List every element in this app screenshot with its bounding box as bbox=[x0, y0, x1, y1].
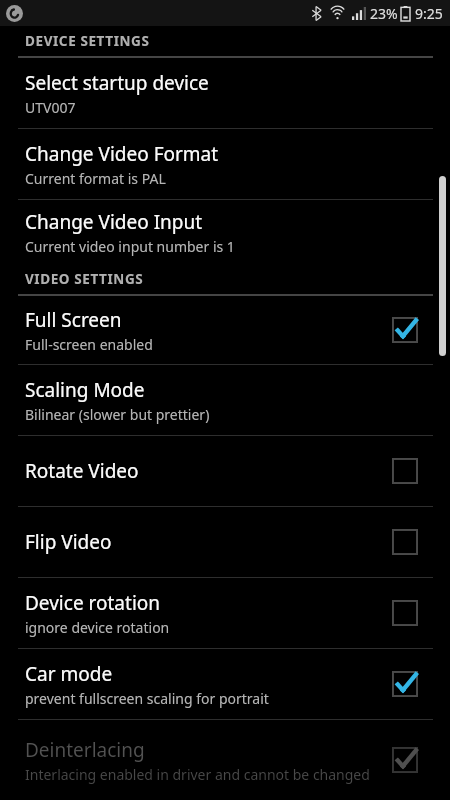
button[interactable]: Toggle Flip Video bbox=[388, 525, 422, 559]
staticText: VIDEO SETTINGS bbox=[25, 270, 144, 288]
button[interactable]: Full Screen bbox=[0, 296, 450, 364]
button[interactable]: Change Video Input bbox=[0, 200, 450, 264]
staticText: Interlacing enabled in driver and cannot… bbox=[25, 765, 370, 784]
staticText: Full Screen bbox=[25, 307, 122, 333]
staticText: DEVICE SETTINGS bbox=[25, 32, 150, 50]
button[interactable]: Change Video Format bbox=[0, 129, 450, 199]
button[interactable]: Select startup device bbox=[0, 58, 450, 128]
button[interactable]: Car mode bbox=[0, 649, 450, 719]
staticText: Device rotation bbox=[25, 590, 161, 616]
button[interactable]: Toggle Full Screen bbox=[388, 313, 422, 347]
button[interactable]: Toggle Car mode bbox=[388, 667, 422, 701]
staticText: Change Video Input bbox=[25, 209, 203, 235]
staticText: UTV007 bbox=[25, 98, 76, 117]
staticText: prevent fullscreen scaling for portrait bbox=[25, 689, 269, 708]
button[interactable]: Rotate Video bbox=[0, 436, 450, 506]
button[interactable]: Flip Video bbox=[0, 507, 450, 577]
staticText: Select startup device bbox=[25, 70, 209, 96]
button[interactable]: Scaling Mode bbox=[0, 365, 450, 435]
staticText: Car mode bbox=[25, 661, 113, 687]
staticText: Current format is PAL bbox=[25, 169, 166, 188]
staticText: Current video input number is 1 bbox=[25, 237, 235, 256]
staticText: Scaling Mode bbox=[25, 377, 145, 403]
staticText: Bilinear (slower but prettier) bbox=[25, 405, 210, 424]
staticText: Deinterlacing bbox=[25, 737, 145, 763]
staticText: Change Video Format bbox=[25, 141, 219, 167]
staticText: Flip Video bbox=[25, 529, 112, 555]
button[interactable]: Toggle Rotate Video bbox=[388, 454, 422, 488]
staticText: 23% bbox=[370, 4, 398, 23]
staticText: Full-screen enabled bbox=[25, 335, 153, 354]
button: Toggle Deinterlacing bbox=[388, 743, 422, 777]
button: Deinterlacing bbox=[0, 720, 450, 800]
staticText: 9:25 bbox=[415, 4, 443, 23]
button[interactable]: Toggle Device rotation bbox=[388, 596, 422, 630]
staticText: ignore device rotation bbox=[25, 618, 170, 637]
staticText: Rotate Video bbox=[25, 458, 139, 484]
button[interactable]: Device rotation bbox=[0, 578, 450, 648]
